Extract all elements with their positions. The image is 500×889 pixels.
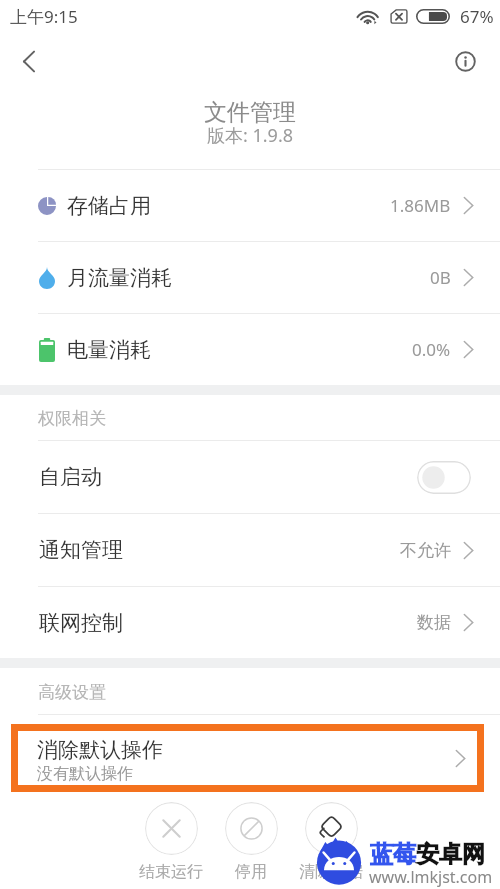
staticText: 清除数据 [291,862,371,882]
staticText: 消除默认操作 [37,737,163,763]
staticText: 文件管理 [204,98,296,127]
staticText: 1.86MB [390,194,451,217]
staticText: 月流量消耗 [67,265,172,291]
staticText: 0.0% [412,338,451,361]
button[interactable]: 电量消耗 [0,314,500,385]
staticText: 数据 [417,612,451,633]
staticText: 自启动 [39,464,102,490]
staticText: 67% [460,5,494,28]
button[interactable]: 月流量消耗 [0,242,500,313]
button[interactable]: Info [440,34,500,88]
staticText: 蓝莓 [370,840,416,869]
staticText: 没有默认操作 [37,764,133,784]
button[interactable]: 自启动 toggle [417,461,471,494]
button[interactable]: Back [0,34,58,88]
staticText: www.lmkjst.com [369,866,493,888]
staticText: 权限相关 [38,408,106,429]
button[interactable]: 存储占用 [0,170,500,241]
staticText: 不允许 [400,540,451,561]
staticText: 停用 [211,862,291,882]
staticText: 存储占用 [67,193,151,219]
staticText: 结束运行 [131,862,211,882]
staticText: 通知管理 [39,537,123,563]
button[interactable]: 消除默认操作 [18,731,477,785]
staticText: 版本: 1.9.8 [207,123,294,148]
staticText: 电量消耗 [67,337,151,363]
staticText: 上午9:15 [10,5,78,28]
button[interactable]: 停用 [211,795,291,848]
staticText: 联网控制 [39,610,123,636]
staticText: 高级设置 [38,682,106,703]
button[interactable]: 联网控制 [0,587,500,658]
staticText: 安卓网 [416,840,485,869]
button[interactable]: 自启动 [0,441,500,513]
button[interactable]: 通知管理 [0,514,500,586]
button[interactable]: 清除数据 [291,795,371,848]
button[interactable]: 结束运行 [131,795,211,848]
staticText: 0B [430,266,451,289]
